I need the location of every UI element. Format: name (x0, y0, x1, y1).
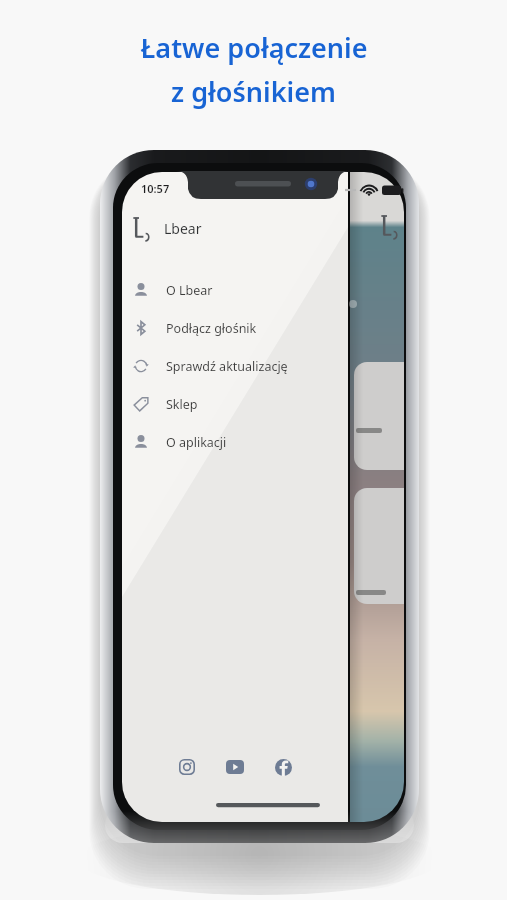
staticText: Sklep (166, 396, 198, 413)
button[interactable]: Instagram (171, 751, 203, 783)
staticText: O aplikacji (166, 434, 227, 451)
button[interactable]: Sklep (126, 385, 348, 423)
button[interactable]: O Lbear (126, 271, 348, 309)
button[interactable]: Lbear (128, 211, 206, 246)
staticText: Sprawdź aktualizację (166, 358, 288, 375)
staticText: O Lbear (166, 282, 213, 299)
button[interactable]: Podłącz głośnik (126, 309, 348, 347)
button[interactable]: O aplikacji (126, 423, 348, 461)
staticText: z głośnikiem (171, 73, 336, 110)
staticText: Lbear (164, 219, 202, 238)
button[interactable]: YouTube (219, 751, 251, 783)
button[interactable]: Sprawdź aktualizację (126, 347, 348, 385)
staticText: Podłącz głośnik (166, 320, 257, 337)
button[interactable]: Facebook (267, 751, 299, 783)
staticText: 10:57 (141, 181, 170, 196)
staticText: Łatwe połączenie (140, 29, 368, 66)
